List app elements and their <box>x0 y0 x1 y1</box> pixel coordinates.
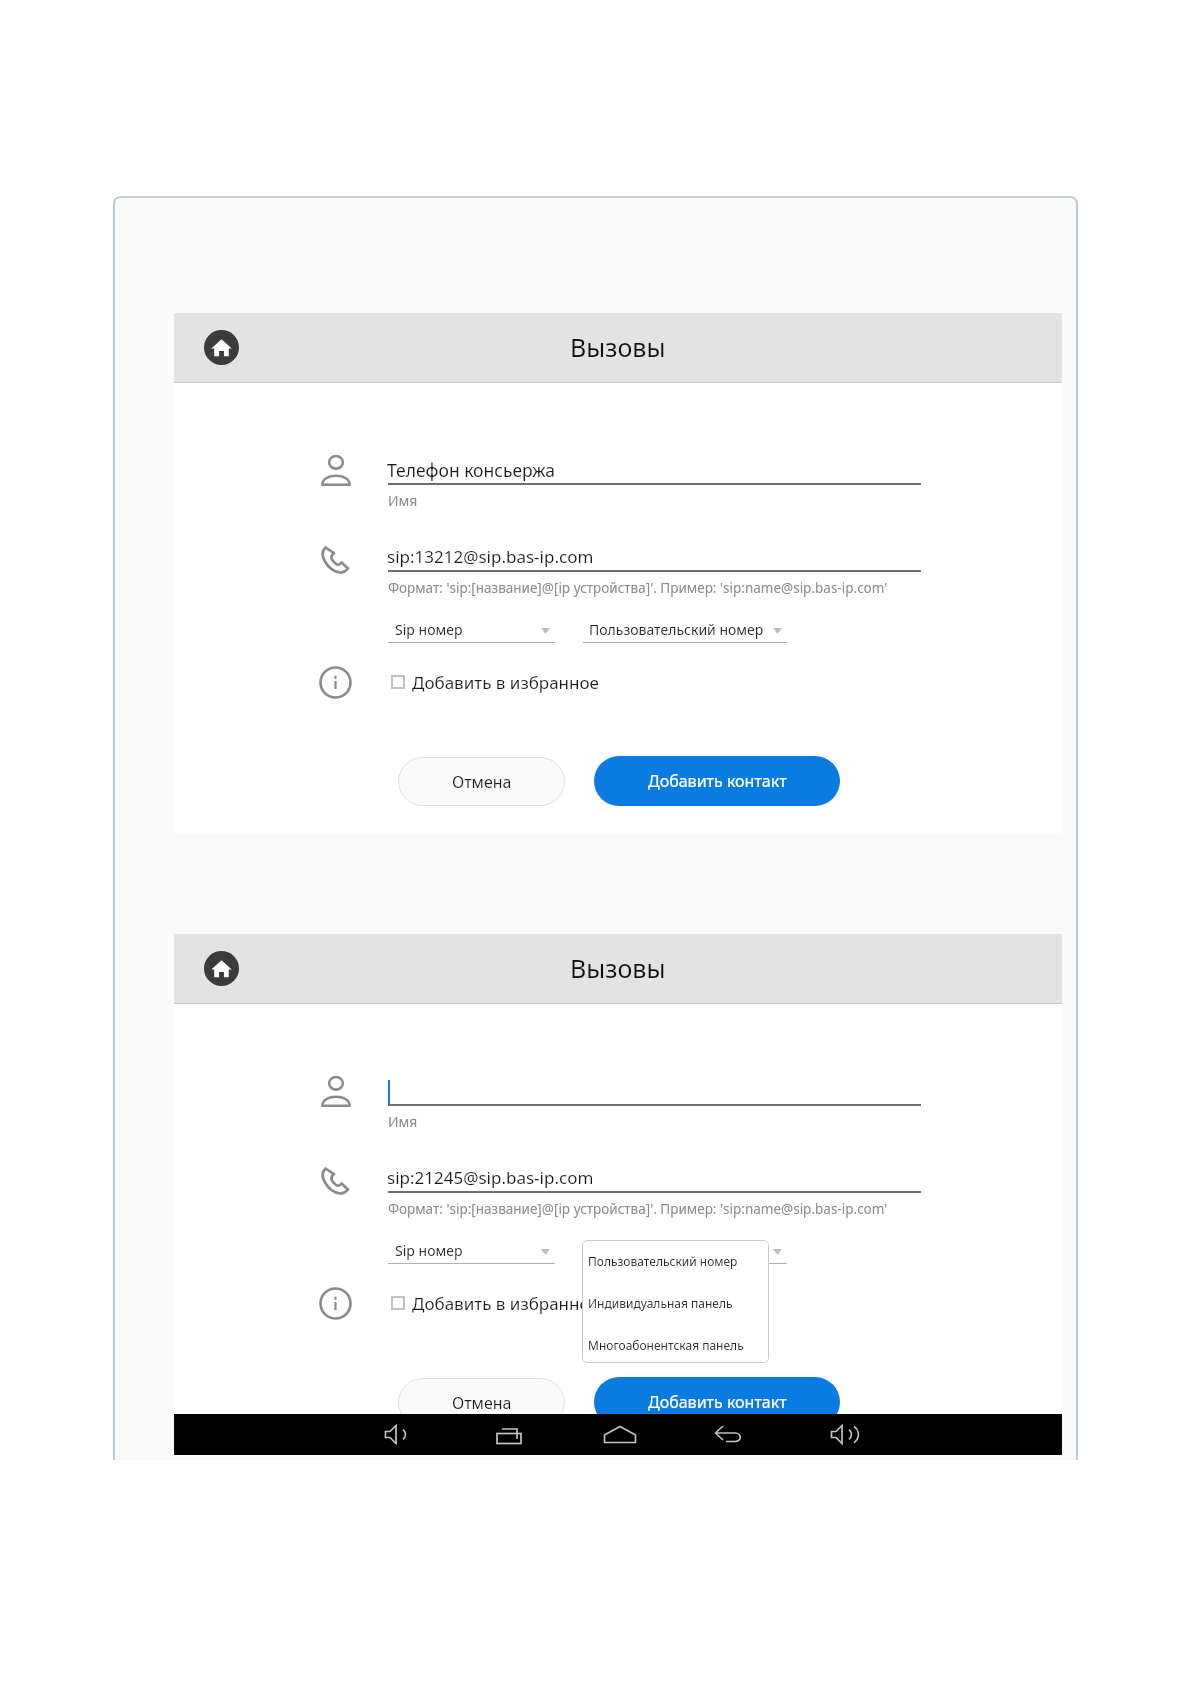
staticText: Формат: 'sip:[название]@[ip устройства]'… <box>388 579 888 597</box>
staticText: Имя <box>388 1112 418 1131</box>
button[interactable]: Индивидуальная панель <box>582 1287 769 1319</box>
staticText: Добавить контакт <box>648 1391 787 1413</box>
button[interactable]: Пользовательский номер <box>583 610 787 643</box>
button[interactable]: Sip номер <box>388 610 555 643</box>
staticText: Индивидуальная панель <box>588 1295 733 1311</box>
staticText: Sip номер <box>395 620 463 639</box>
staticText: Вызовы <box>570 330 666 364</box>
button[interactable]: Home <box>204 330 239 365</box>
button[interactable]: Добавить в избранное <box>389 1284 779 1320</box>
staticText: Пользовательский номер <box>588 1253 738 1269</box>
staticText: sip:21245@sip.bas-ip.com <box>387 1166 594 1189</box>
button[interactable]: Отмена <box>398 757 565 806</box>
staticText: Многоабонентская панель <box>588 1337 744 1353</box>
staticText: Отмена <box>452 771 512 793</box>
button[interactable]: Добавить контакт <box>594 756 840 806</box>
staticText: sip:13212@sip.bas-ip.com <box>387 545 594 568</box>
button[interactable]: Volume down <box>374 1418 416 1451</box>
button[interactable]: Sip номер <box>388 1231 555 1264</box>
button[interactable]: Volume up <box>820 1418 862 1451</box>
staticText: Формат: 'sip:[название]@[ip устройства]'… <box>388 1200 888 1218</box>
staticText: Отмена <box>452 1392 512 1414</box>
button[interactable]: Home <box>599 1418 641 1451</box>
staticText: Пользовательский номер <box>589 1241 764 1260</box>
button[interactable]: Пользовательский номер <box>583 1231 787 1264</box>
button[interactable]: Пользовательский номер <box>582 1245 769 1277</box>
staticText: Имя <box>388 491 418 510</box>
staticText: Добавить в избранное <box>412 1292 599 1315</box>
staticText: Пользовательский номер <box>589 620 764 639</box>
button[interactable]: Отмена <box>398 1378 565 1427</box>
staticText: Телефон консьержа <box>387 458 556 482</box>
button[interactable]: Многоабонентская панель <box>582 1329 769 1361</box>
staticText: Добавить в избранное <box>412 671 599 694</box>
button[interactable]: Добавить контакт <box>594 1377 840 1427</box>
button[interactable]: Back <box>708 1418 750 1451</box>
staticText: Вызовы <box>570 951 666 985</box>
staticText: Sip номер <box>395 1241 463 1260</box>
button[interactable]: Добавить в избранное <box>389 663 779 699</box>
button[interactable]: Recent apps <box>488 1418 530 1451</box>
staticText: Добавить контакт <box>648 770 787 792</box>
button[interactable]: Home <box>204 951 239 986</box>
